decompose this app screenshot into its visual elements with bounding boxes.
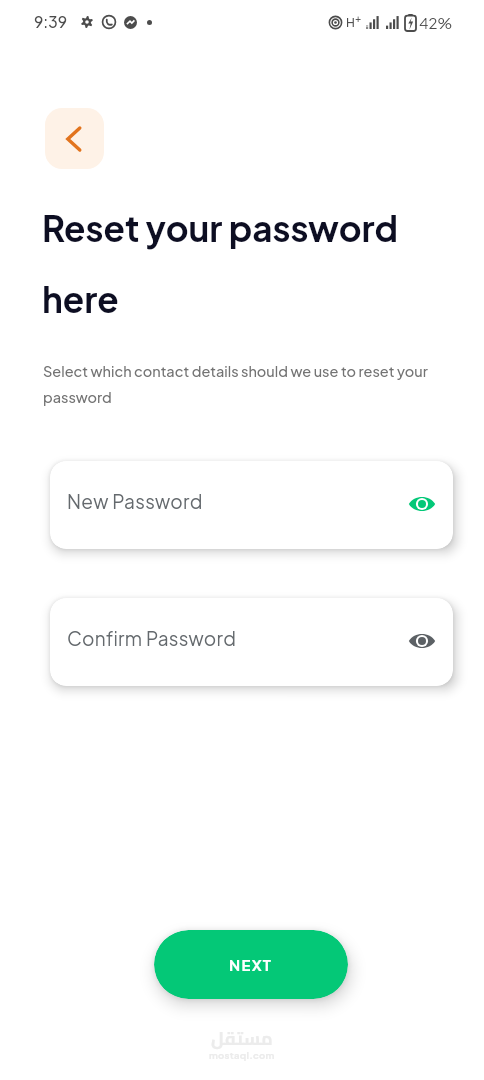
button[interactable]: Show password bbox=[405, 488, 439, 522]
button[interactable]: Show password bbox=[405, 625, 439, 659]
staticText: مستقل bbox=[211, 1022, 273, 1056]
staticText: 42% bbox=[419, 13, 453, 32]
staticText: Reset your password here bbox=[42, 206, 422, 320]
staticText: New Password bbox=[67, 489, 203, 513]
staticText: + bbox=[355, 12, 362, 25]
button[interactable]: Confirm Password bbox=[50, 598, 453, 686]
staticText: 9:39 bbox=[34, 12, 67, 32]
staticText: mostaql.com bbox=[209, 1049, 275, 1061]
staticText: NEXT bbox=[229, 955, 273, 974]
button[interactable]: New Password bbox=[50, 461, 453, 549]
staticText: Confirm Password bbox=[67, 626, 237, 650]
button[interactable]: Back bbox=[45, 108, 104, 169]
button[interactable]: NEXT bbox=[154, 930, 348, 999]
staticText: H bbox=[346, 15, 355, 30]
staticText: Select which contact details should we u… bbox=[43, 362, 439, 407]
